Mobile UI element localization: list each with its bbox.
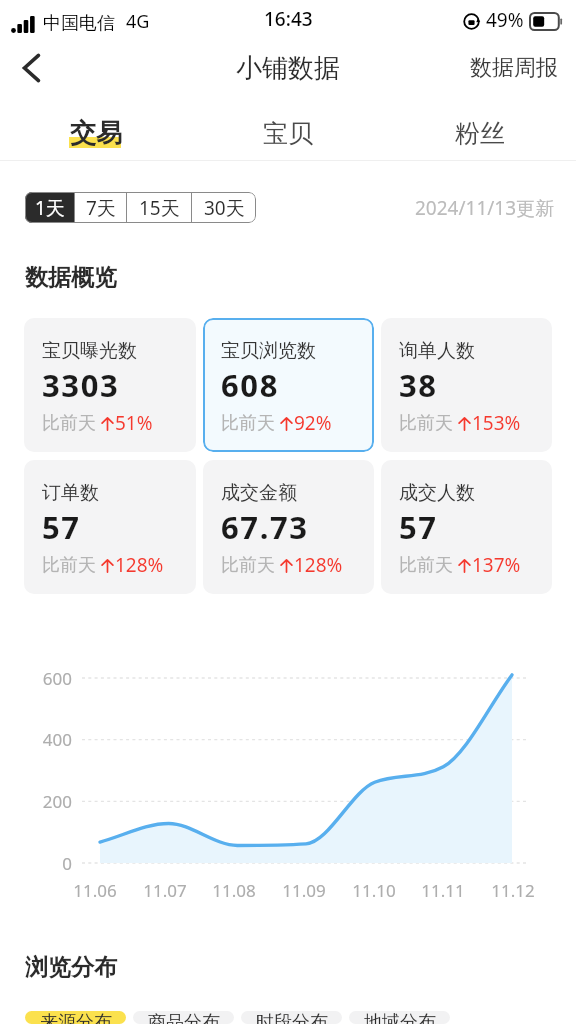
button[interactable]: 1天 — [25, 192, 74, 223]
staticText: 地域分布 — [364, 1011, 436, 1024]
staticText: 2024/11/13更新 — [415, 195, 555, 221]
button[interactable]: 交易 — [0, 95, 192, 160]
button[interactable]: 成交金额 — [203, 460, 374, 594]
staticText: 608 — [221, 364, 279, 406]
staticText: 宝贝 — [263, 118, 313, 149]
staticText: 11.11 — [418, 879, 468, 902]
button[interactable]: 成交人数 — [381, 460, 552, 594]
staticText: 7天 — [86, 195, 116, 221]
staticText: 11.07 — [140, 879, 190, 902]
button[interactable]: 地域分布 — [349, 1011, 450, 1024]
staticText: 宝贝浏览数 — [221, 339, 316, 363]
staticText: 92% — [294, 410, 332, 436]
staticText: 128% — [294, 552, 343, 578]
staticText: 成交人数 — [399, 481, 475, 505]
staticText: 15天 — [139, 195, 180, 221]
staticText: 57 — [42, 506, 81, 548]
staticText: 比前天 — [42, 554, 96, 577]
staticText: 浏览分布 — [25, 953, 117, 982]
staticText: 11.08 — [209, 879, 259, 902]
button[interactable]: 来源分布 — [25, 1011, 126, 1024]
staticText: 3303 — [42, 364, 120, 406]
staticText: 57 — [399, 506, 438, 548]
button[interactable]: 时段分布 — [241, 1011, 342, 1024]
staticText: 38 — [399, 364, 438, 406]
staticText: 49% — [486, 7, 524, 33]
staticText: 成交金额 — [221, 481, 297, 505]
staticText: 时段分布 — [256, 1011, 328, 1024]
button[interactable]: 粉丝 — [384, 95, 576, 160]
staticText: 交易 — [70, 117, 122, 150]
button[interactable]: 宝贝 — [192, 95, 384, 160]
staticText: 比前天 — [221, 412, 275, 435]
staticText: 比前天 — [42, 412, 96, 435]
staticText: 订单数 — [42, 481, 99, 505]
staticText: 11.12 — [488, 879, 538, 902]
staticText: 600 — [0, 667, 72, 690]
staticText: 137% — [472, 552, 521, 578]
staticText: 30天 — [204, 195, 245, 221]
button[interactable]: 30天 — [192, 192, 256, 223]
staticText: 粉丝 — [455, 118, 505, 149]
button[interactable]: 15天 — [127, 192, 191, 223]
staticText: 4G — [126, 9, 150, 34]
staticText: 153% — [472, 410, 521, 436]
staticText: 0 — [0, 852, 72, 875]
staticText: 200 — [0, 790, 72, 813]
staticText: 67.73 — [221, 506, 309, 548]
staticText: 小铺数据 — [236, 52, 340, 85]
staticText: 比前天 — [399, 412, 453, 435]
staticText: 数据周报 — [470, 54, 558, 82]
staticText: 询单人数 — [399, 339, 475, 363]
staticText: 中国电信 — [43, 12, 115, 35]
staticText: 16:43 — [264, 6, 313, 32]
button[interactable]: 数据周报 — [460, 46, 576, 90]
staticText: 比前天 — [221, 554, 275, 577]
staticText: 11.10 — [349, 879, 399, 902]
staticText: 比前天 — [399, 554, 453, 577]
button[interactable]: Back — [14, 46, 58, 90]
staticText: 128% — [115, 552, 164, 578]
button[interactable]: 订单数 — [24, 460, 196, 594]
staticText: 商品分布 — [148, 1011, 220, 1024]
button[interactable]: 宝贝曝光数 — [24, 318, 196, 452]
button[interactable]: 询单人数 — [381, 318, 552, 452]
button[interactable]: 7天 — [75, 192, 126, 223]
staticText: 数据概览 — [25, 263, 117, 292]
staticText: 51% — [115, 410, 153, 436]
staticText: 11.06 — [70, 879, 120, 902]
button[interactable]: 商品分布 — [133, 1011, 234, 1024]
staticText: 400 — [0, 728, 72, 751]
staticText: 1天 — [35, 195, 65, 221]
staticText: 来源分布 — [40, 1011, 112, 1024]
staticText: 11.09 — [279, 879, 329, 902]
staticText: 宝贝曝光数 — [42, 339, 137, 363]
button[interactable]: 宝贝浏览数 — [203, 318, 374, 452]
